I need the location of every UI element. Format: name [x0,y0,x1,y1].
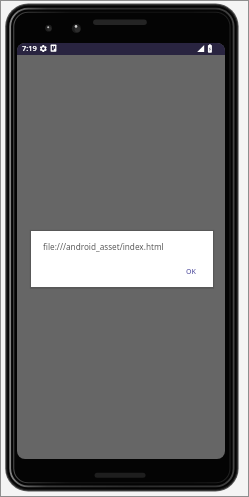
staticText: OK [186,267,196,277]
button[interactable]: OK [180,261,202,283]
staticText: file:///android_asset/index.html [43,241,164,252]
staticText: 7:19 [22,43,37,53]
